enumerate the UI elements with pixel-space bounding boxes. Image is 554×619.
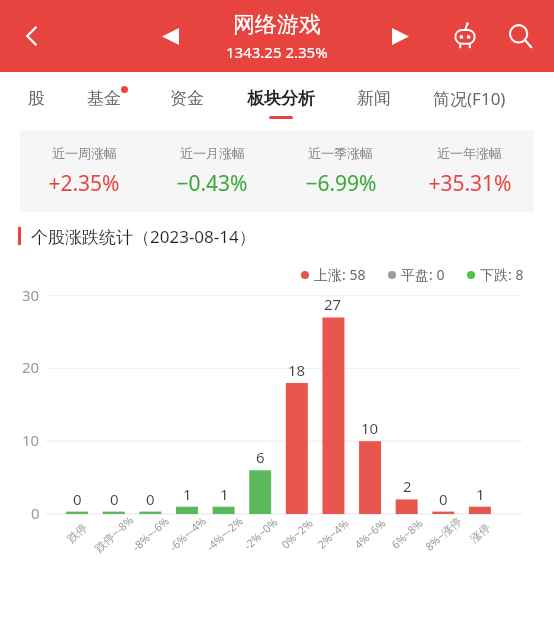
staticText: 1 [220, 484, 229, 504]
staticText: 10 [22, 430, 40, 450]
staticText: +35.31% [428, 169, 512, 198]
staticText: 6%~8% [388, 515, 426, 552]
button[interactable]: 近一月涨幅 [148, 145, 276, 198]
button[interactable]: 近一周涨幅 [20, 145, 148, 198]
button[interactable]: 近一年涨幅 [405, 145, 534, 198]
staticText: 30 [22, 285, 40, 305]
staticText: -4%~-2% [203, 513, 246, 554]
staticText: 10 [361, 418, 379, 438]
staticText: 1 [183, 484, 192, 504]
staticText: 27 [324, 294, 342, 314]
staticText: 0 [31, 503, 40, 523]
button[interactable]: 近一季涨幅 [276, 145, 405, 198]
staticText: 个股涨跌统计（2023-08-14） [31, 225, 256, 248]
staticText: 上涨: 58 [314, 265, 366, 284]
button[interactable]: 板块分析 [247, 72, 315, 124]
button[interactable]: AI assistant [444, 15, 486, 57]
staticText: 0 [439, 489, 448, 509]
staticText: −6.99% [305, 169, 377, 198]
staticText: 简况(F10) [433, 87, 506, 110]
button[interactable]: Next sector [380, 16, 420, 56]
staticText: 近一季涨幅 [308, 145, 373, 161]
button[interactable]: 上涨: 58 [301, 265, 366, 284]
staticText: 0 [73, 489, 82, 509]
button[interactable]: 股 [28, 72, 45, 124]
staticText: 新闻 [357, 88, 391, 109]
staticText: 4%~6% [351, 515, 389, 552]
staticText: 下跌: 8 [480, 265, 524, 284]
staticText: 资金 [170, 88, 204, 109]
staticText: 18 [288, 360, 306, 380]
button[interactable]: Previous sector [150, 16, 190, 56]
staticText: 板块分析 [247, 88, 315, 109]
staticText: 2 [403, 476, 412, 496]
button[interactable]: 平盘: 0 [388, 265, 445, 284]
staticText: 网络游戏 [233, 11, 321, 39]
staticText: 近一周涨幅 [52, 145, 117, 161]
staticText: 0%~2% [278, 515, 316, 552]
staticText: 近一年涨幅 [437, 145, 502, 161]
staticText: 1343.25 2.35% [226, 42, 328, 62]
staticText: 跌停~-8% [91, 512, 137, 555]
staticText: 6 [256, 447, 265, 467]
staticText: 20 [22, 357, 40, 377]
button[interactable]: 资金 [170, 72, 204, 124]
staticText: 2%~4% [314, 515, 352, 552]
staticText: 0 [110, 489, 119, 509]
staticText: 跌停 [64, 520, 90, 545]
button[interactable]: Back [10, 14, 54, 58]
staticText: -8%~-6% [129, 513, 172, 554]
button[interactable]: 基金 [87, 72, 128, 124]
staticText: 平盘: 0 [401, 265, 445, 284]
button[interactable]: 简况(F10) [433, 72, 506, 124]
staticText: 涨停 [467, 520, 493, 545]
button[interactable]: 新闻 [357, 72, 391, 124]
button[interactable]: Search [498, 14, 542, 58]
staticText: -2%~0% [240, 514, 281, 553]
staticText: -6%~-4% [166, 513, 209, 554]
staticText: +2.35% [48, 169, 120, 198]
staticText: 0 [146, 489, 155, 509]
button[interactable]: 下跌: 8 [467, 265, 524, 284]
staticText: 股 [28, 88, 45, 109]
staticText: 近一月涨幅 [180, 145, 245, 161]
staticText: 1 [476, 484, 485, 504]
staticText: −0.43% [176, 169, 248, 198]
staticText: 8%~涨停 [422, 513, 464, 554]
staticText: 基金 [87, 88, 121, 109]
